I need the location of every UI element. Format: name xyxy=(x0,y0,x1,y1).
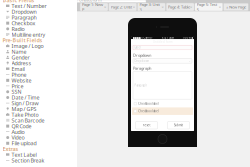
staticText: Phone xyxy=(12,71,27,78)
staticText: Dropdown xyxy=(133,53,151,58)
staticText: Submit xyxy=(174,123,183,127)
staticText: Scan Barcode xyxy=(12,117,45,124)
button[interactable]: Audio xyxy=(0,129,77,135)
button[interactable]: Section Break xyxy=(0,158,77,163)
button[interactable]: QR Code xyxy=(0,123,77,129)
staticText: Basic Fields xyxy=(2,0,34,4)
button[interactable]: Page 4: Table xyxy=(166,3,194,11)
staticText: Image / Logo xyxy=(12,42,44,50)
button[interactable]: Page 3: Unit 3 xyxy=(137,3,165,11)
staticText: Sign / Draw xyxy=(12,100,39,107)
button[interactable]: Name xyxy=(0,49,77,55)
staticText: Radio xyxy=(12,25,25,32)
staticText: Paragraph xyxy=(133,65,151,71)
staticText: Text Label xyxy=(12,151,37,158)
button[interactable]: Checkbox xyxy=(0,20,77,26)
staticText: Website xyxy=(12,77,32,84)
button[interactable]: Map / GPS xyxy=(0,106,77,112)
staticText: + New Page xyxy=(226,4,246,10)
button[interactable]: Text / Number xyxy=(0,3,77,9)
button[interactable]: Page 2: Untit xyxy=(109,3,137,11)
button[interactable]: Website xyxy=(0,77,77,83)
button[interactable]: Text Label xyxy=(0,152,77,157)
staticText: × xyxy=(104,4,106,10)
button[interactable]: Date / Time xyxy=(0,95,77,100)
button[interactable]: Scan Barcode xyxy=(0,117,77,123)
staticText: Untitled form xyxy=(153,40,172,44)
button[interactable]: Radio xyxy=(0,26,77,32)
staticText: × xyxy=(219,4,221,10)
staticText: Checkbox label xyxy=(138,109,159,113)
staticText: 100% ▮ xyxy=(182,36,192,39)
button[interactable]: + New Page xyxy=(223,3,248,11)
staticText: Audio xyxy=(12,128,25,135)
staticText: Email xyxy=(12,65,25,72)
staticText: Dropdown xyxy=(12,8,37,15)
button[interactable]: Price xyxy=(0,83,77,89)
button[interactable]: Image / Logo xyxy=(0,43,77,49)
staticText: Date / Time xyxy=(12,94,40,101)
staticText: QR Code xyxy=(12,123,32,130)
staticText: Map / GPS xyxy=(12,105,37,112)
staticText: Paragraph xyxy=(12,14,37,21)
staticText: Multiline entry xyxy=(12,31,46,38)
button[interactable]: Submit xyxy=(167,122,189,129)
staticText: Page 2: Untit xyxy=(111,4,132,10)
button[interactable]: Address xyxy=(0,60,77,66)
staticText: Dropdown xyxy=(134,59,149,63)
button[interactable]: Checkbox label xyxy=(132,100,193,107)
button[interactable]: Email xyxy=(0,66,77,72)
staticText: Text / Number xyxy=(12,2,47,9)
staticText: Video xyxy=(12,134,25,141)
staticText: Name xyxy=(12,48,27,55)
staticText: Checkbox label xyxy=(138,102,159,105)
staticText: Page 5: Test 5 xyxy=(197,2,217,12)
staticText: Label xyxy=(134,46,141,49)
staticText: Page 3: Unit 3 xyxy=(139,2,159,12)
staticText: Section Break xyxy=(12,157,45,164)
staticText: File upload xyxy=(12,140,37,147)
button[interactable]: Paragraph xyxy=(0,15,77,20)
staticText: Reset xyxy=(142,123,150,127)
staticText: ⌄ xyxy=(189,59,191,62)
staticText: Page 4: Table xyxy=(168,4,190,10)
button[interactable]: Reset xyxy=(135,122,157,129)
staticText: × xyxy=(161,4,163,10)
button[interactable]: SSN xyxy=(0,89,77,95)
staticText: Untitled form xyxy=(79,0,102,3)
button[interactable]: Multiline entry xyxy=(0,32,77,37)
button[interactable]: Phone xyxy=(0,72,77,77)
staticText: Gender xyxy=(12,54,30,61)
button[interactable]: Page 5: Test 5 xyxy=(195,3,223,11)
staticText: ●●●●○ Carrier xyxy=(133,36,153,39)
staticText: Take Photo xyxy=(12,111,39,118)
button[interactable]: Sign / Draw xyxy=(0,100,77,106)
staticText: Paragraph xyxy=(134,84,147,87)
staticText: Price xyxy=(12,82,24,90)
staticText: Extras xyxy=(2,145,18,152)
staticText: 9:41 AM xyxy=(161,36,173,39)
button[interactable]: Video xyxy=(0,135,77,140)
staticText: × xyxy=(133,4,135,10)
button[interactable]: Take Photo xyxy=(0,112,77,117)
staticText: Checkbox xyxy=(12,20,36,27)
button[interactable]: Gender xyxy=(0,55,77,60)
staticText: Pre-Built Fields xyxy=(2,37,42,44)
staticText: SSN xyxy=(12,88,22,95)
button[interactable]: Page 1: New P xyxy=(80,3,108,11)
button[interactable]: File upload xyxy=(0,140,77,146)
staticText: × xyxy=(190,4,192,10)
button[interactable]: Checkbox label xyxy=(132,107,193,115)
staticText: Address xyxy=(12,60,32,67)
staticText: Page 1: New P xyxy=(82,2,103,12)
button[interactable]: Dropdown xyxy=(0,9,77,14)
